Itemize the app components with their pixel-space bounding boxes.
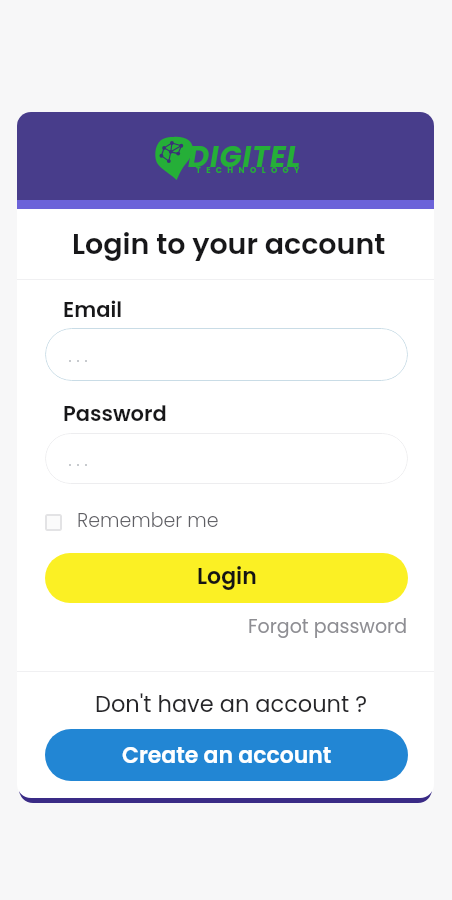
staticText: DIGITEL xyxy=(188,137,302,178)
staticText: Email xyxy=(63,295,123,324)
button[interactable] xyxy=(45,433,408,484)
button[interactable]: Create an account xyxy=(45,729,408,781)
other: Digitel logo xyxy=(154,136,193,180)
staticText: Remember me xyxy=(77,507,219,531)
staticText: Login xyxy=(197,561,257,592)
button[interactable]: Forgot password xyxy=(248,613,408,640)
staticText: Password xyxy=(63,399,167,428)
staticText: Login to your account xyxy=(72,224,386,264)
staticText: Create an account xyxy=(122,740,332,771)
staticText: TECHNOLOGY xyxy=(196,165,305,176)
staticText: Don't have an account ? xyxy=(95,688,368,719)
button[interactable]: Login xyxy=(45,553,408,603)
button[interactable]: Remember me xyxy=(45,507,219,531)
button[interactable] xyxy=(45,328,408,381)
